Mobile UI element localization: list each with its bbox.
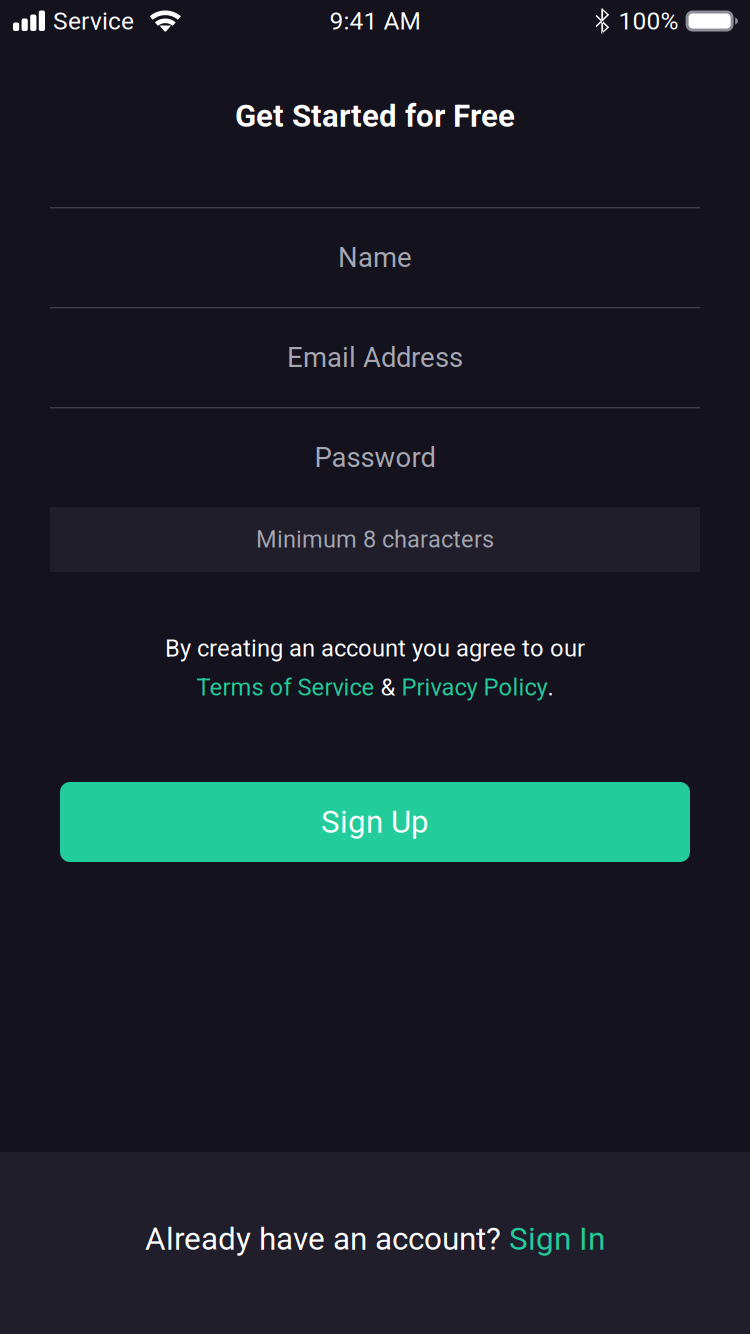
staticText: Sign In (509, 1221, 605, 1257)
staticText: 9:41 AM (329, 7, 420, 35)
button[interactable]: Name (50, 208, 700, 307)
staticText: Sign Up (321, 804, 429, 840)
button[interactable]: Privacy Policy (401, 674, 547, 701)
staticText: 100% (619, 7, 679, 35)
staticText: Get Started for Free (235, 98, 515, 134)
button[interactable]: Sign In (0, 1152, 750, 1334)
staticText: Minimum 8 characters (256, 526, 494, 553)
staticText: Name (338, 242, 412, 274)
staticText: . (547, 674, 553, 701)
staticText: Terms of Service (196, 674, 374, 701)
button[interactable]: Terms of Service (196, 674, 374, 701)
staticText: & (374, 674, 401, 701)
staticText: By creating an account you agree to our (165, 635, 585, 662)
button[interactable]: Email Address (50, 308, 700, 407)
button[interactable]: Password (50, 408, 700, 507)
staticText: Email Address (287, 342, 463, 374)
staticText: Already have an account? (145, 1221, 509, 1257)
staticText: Privacy Policy (401, 674, 547, 701)
button[interactable]: Sign Up (60, 782, 690, 862)
staticText: Service (53, 7, 134, 35)
staticText: Password (314, 442, 435, 474)
